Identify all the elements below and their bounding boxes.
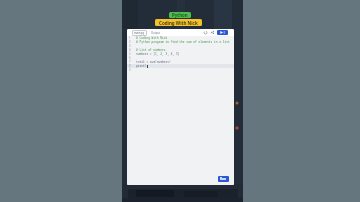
staticText: 5 <box>129 52 131 56</box>
staticText: # Python program to find the sum of elem… <box>136 40 230 44</box>
staticText: 2 <box>129 40 131 44</box>
staticText: Python <box>172 12 188 18</box>
staticText: Output <box>151 31 161 35</box>
staticText: 4 <box>129 48 131 52</box>
button[interactable] <box>204 31 207 34</box>
staticText: total = sum(numbers) <box>136 60 171 64</box>
staticText: # Coding With Nick <box>136 36 168 40</box>
button[interactable]: main.py <box>132 30 147 36</box>
staticText: Coding With Nick <box>159 20 198 26</box>
button[interactable]: Python <box>169 12 191 18</box>
staticText: 9 <box>129 68 131 72</box>
staticText: 6 <box>129 56 131 60</box>
staticText: print( <box>136 64 147 68</box>
button[interactable]: Run <box>218 176 229 182</box>
staticText: numbers = [1, 2, 3, 4, 5] <box>136 52 180 56</box>
staticText: 8 <box>129 64 131 68</box>
button[interactable]: Output <box>151 31 161 35</box>
staticText: 7 <box>129 60 131 64</box>
button[interactable] <box>217 30 228 35</box>
button[interactable] <box>211 31 214 34</box>
staticText: # List of numbers <box>136 48 166 52</box>
staticText: Run <box>220 177 227 181</box>
staticText: 3 <box>129 44 131 48</box>
button[interactable]: Coding With Nick <box>155 19 202 26</box>
staticText: 1 <box>129 36 131 40</box>
staticText: main.py <box>134 31 145 35</box>
